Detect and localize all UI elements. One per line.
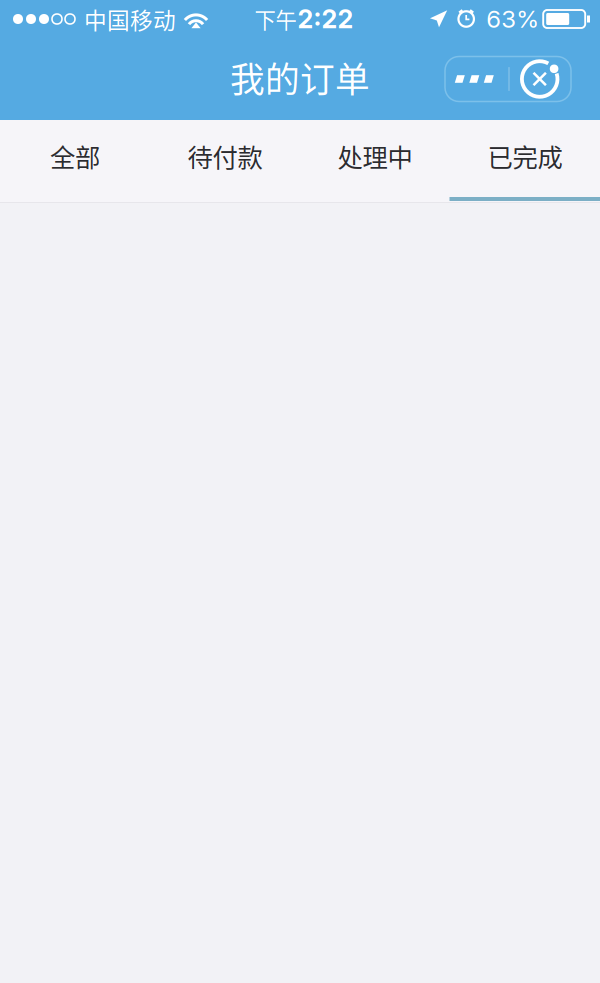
button[interactable]: 已完成: [450, 120, 600, 202]
staticText: 待付款: [187, 138, 262, 174]
staticText: 2:22: [297, 4, 353, 34]
button[interactable]: 待付款: [150, 120, 300, 202]
staticText: 处理中: [337, 138, 412, 174]
button[interactable]: 处理中: [300, 120, 450, 202]
staticText: 我的订单: [230, 52, 370, 103]
staticText: 已完成: [487, 138, 562, 174]
staticText: 下午: [254, 4, 296, 34]
button[interactable]: 全部: [0, 120, 150, 202]
staticText: 中国移动: [84, 3, 176, 35]
button[interactable]: More options and close: [445, 56, 571, 101]
staticText: 63%: [486, 4, 539, 33]
staticText: 全部: [50, 138, 100, 174]
